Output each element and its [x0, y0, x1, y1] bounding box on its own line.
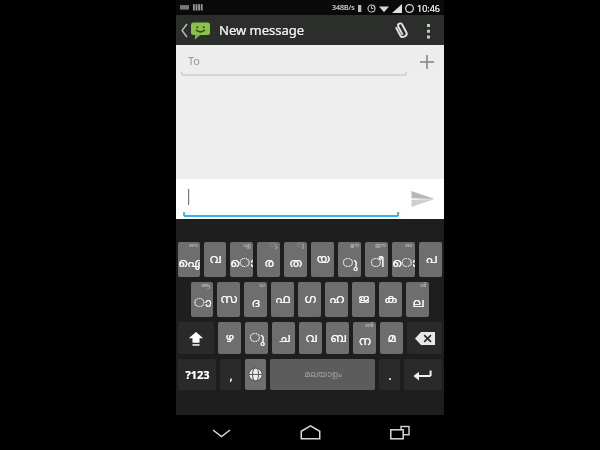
button[interactable]: More options — [416, 15, 440, 45]
button[interactable]: Attach — [386, 15, 416, 45]
staticText: . — [388, 367, 392, 383]
staticText: ബ — [330, 332, 346, 345]
staticText: ദ — [251, 297, 260, 310]
staticText: ഐ — [178, 257, 200, 270]
staticText: മ — [387, 332, 396, 345]
staticText: ഹ — [329, 293, 344, 306]
staticText: ഴ — [225, 332, 234, 345]
staticText: ത — [289, 257, 302, 270]
button[interactable]: ഫ — [271, 282, 294, 317]
staticText: ൂ — [297, 242, 305, 248]
staticText: ഈ — [375, 242, 386, 248]
button[interactable]: ധ — [244, 282, 267, 317]
staticText: New message — [219, 21, 305, 39]
button[interactable]: Send — [402, 179, 444, 219]
button[interactable]: ആ — [191, 282, 213, 317]
button[interactable]: ഊ — [338, 242, 361, 277]
staticText: ൾ — [420, 282, 427, 288]
staticText: ധ — [259, 282, 265, 288]
button[interactable]: ൺ — [353, 322, 376, 354]
button[interactable]: ൂ — [284, 242, 307, 277]
staticText: ?123 — [185, 367, 210, 382]
staticText: ച — [278, 332, 290, 345]
staticText: ൊ — [392, 257, 415, 270]
button[interactable]: , — [220, 359, 241, 390]
button[interactable]: Home — [266, 415, 355, 450]
button[interactable]: ഴ — [218, 322, 241, 354]
staticText: ു — [249, 332, 265, 345]
button[interactable]: പ — [419, 242, 442, 277]
button[interactable]: മ — [380, 322, 403, 354]
staticText: ൃ — [270, 242, 278, 248]
staticText: ഓ — [405, 242, 413, 248]
button[interactable]: . — [379, 359, 400, 390]
staticText: ര — [264, 257, 274, 270]
button[interactable]: യ — [311, 242, 334, 277]
button[interactable]: ക — [379, 282, 402, 317]
button[interactable]: ഔ — [178, 242, 200, 277]
button[interactable]: ഏ — [230, 242, 253, 277]
staticText: ാ — [194, 297, 211, 310]
button[interactable]: Change keyboard — [245, 359, 266, 390]
button[interactable]: ?123 — [178, 359, 216, 390]
staticText: ഗ — [304, 293, 316, 306]
staticText: സ — [220, 293, 237, 306]
button[interactable]: ഹ — [325, 282, 348, 317]
button[interactable]: Backspace — [407, 322, 442, 354]
button[interactable]: ു — [245, 322, 268, 354]
staticText: ജ — [358, 293, 369, 306]
button[interactable]: Shift — [178, 322, 214, 354]
staticText: ഫ — [275, 293, 290, 306]
staticText: 348B/s — [332, 3, 355, 13]
button[interactable] — [176, 179, 402, 219]
staticText: പ — [425, 253, 437, 266]
staticText: ഔ — [189, 242, 198, 248]
button[interactable]: ഗ — [298, 282, 321, 317]
staticText: ല — [412, 297, 424, 310]
staticText: To — [188, 53, 201, 68]
staticText: വ — [305, 332, 317, 345]
button[interactable]: ൃ — [257, 242, 280, 277]
button[interactable]: വ — [204, 242, 226, 277]
staticText: ൊ — [230, 257, 253, 270]
staticText: , — [229, 367, 233, 383]
staticText: വ — [209, 253, 221, 266]
button[interactable]: വ — [299, 322, 322, 354]
staticText: ന — [358, 335, 371, 348]
button[interactable]: Recent apps — [355, 415, 444, 450]
staticText: ഏ — [243, 242, 251, 248]
button[interactable]: ബ — [326, 322, 349, 354]
button[interactable]: Add recipient — [410, 45, 444, 78]
button[interactable]: സ — [217, 282, 240, 317]
button[interactable]: ഓ — [392, 242, 415, 277]
staticText: ൺ — [365, 322, 374, 328]
button[interactable]: Enter — [404, 359, 442, 390]
button[interactable]: To — [176, 45, 410, 78]
staticText: യ — [316, 253, 330, 266]
staticText: 10:46 — [417, 2, 441, 14]
staticText: ക — [384, 293, 397, 306]
staticText: ഊ — [350, 242, 359, 248]
button[interactable]: Navigate up — [179, 18, 212, 43]
button[interactable]: ൾ — [406, 282, 429, 317]
button[interactable]: ഈ — [365, 242, 388, 277]
button[interactable]: ച — [272, 322, 295, 354]
staticText: ീ — [370, 257, 384, 270]
staticText: ആ — [201, 282, 211, 288]
button[interactable]: മലയാളം — [270, 359, 375, 390]
staticText: ു — [342, 257, 358, 270]
button[interactable]: ജ — [352, 282, 375, 317]
button[interactable]: Hide keyboard — [176, 415, 266, 450]
staticText: മലയാളം — [304, 370, 342, 379]
